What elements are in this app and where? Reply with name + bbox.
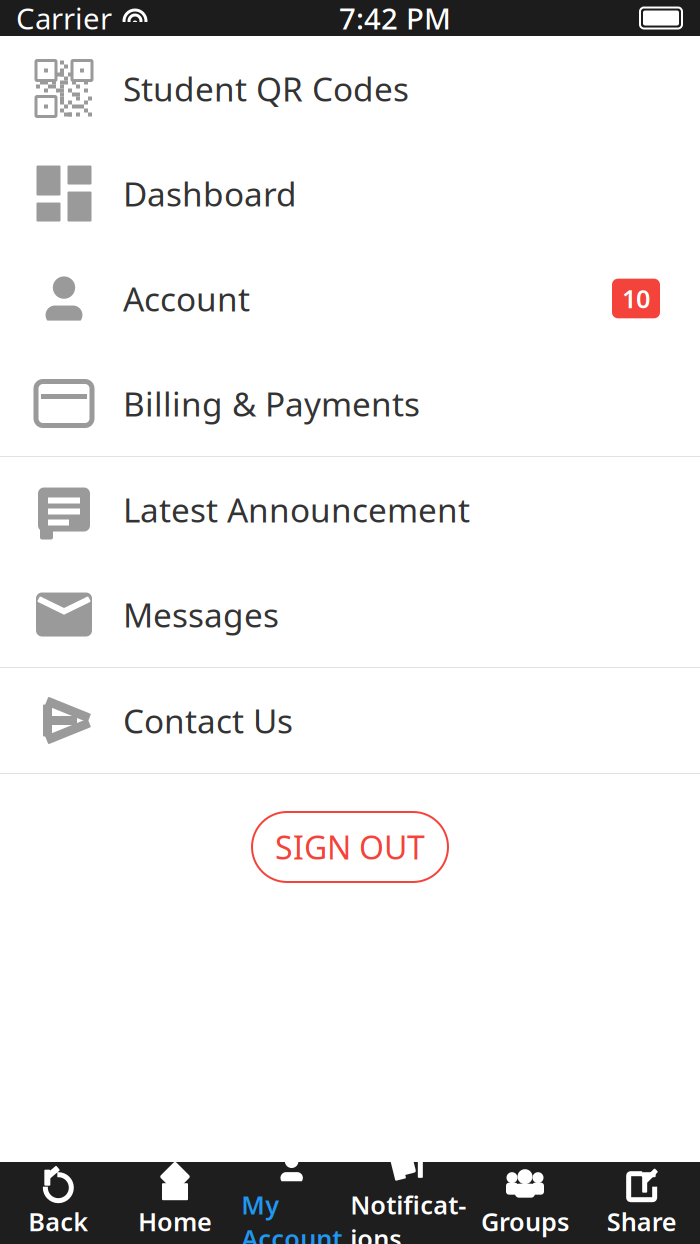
staticText: 10 [622,282,650,315]
button[interactable]: Latest Announcement [0,457,700,562]
staticText: Share [607,1205,677,1238]
button[interactable]: Contact Us [0,668,700,773]
button[interactable]: Billing & Payments [0,351,700,456]
staticText: Billing & Payments [123,381,420,426]
button[interactable]: Share [583,1162,700,1244]
button[interactable]: My Account [233,1162,350,1244]
staticText: Carrier [16,0,112,37]
button[interactable]: SIGN OUT [252,812,448,882]
staticText: Home [138,1205,212,1238]
staticText: Latest Announcement [123,487,470,532]
staticText: Back [28,1205,88,1238]
button[interactable]: Back [0,1162,117,1244]
button[interactable]: Messages [0,562,700,667]
staticText: Messages [123,592,279,637]
staticText: Groups [481,1205,569,1238]
button[interactable]: Home [117,1162,233,1244]
button[interactable]: Groups [467,1162,583,1244]
staticText: Dashboard [123,171,297,216]
staticText: Notifications [350,1188,466,1244]
button[interactable]: Dashboard [0,141,700,246]
staticText: Contact Us [123,698,293,743]
staticText: Student QR Codes [123,66,409,111]
button[interactable]: Notifications [350,1162,467,1244]
button[interactable]: Student QR Codes [0,36,700,141]
staticText: Account [123,276,250,321]
button[interactable]: Account [0,246,700,351]
staticText: 7:42 PM [339,0,451,37]
staticText: My Account [241,1188,342,1244]
staticText: SIGN OUT [275,826,425,868]
